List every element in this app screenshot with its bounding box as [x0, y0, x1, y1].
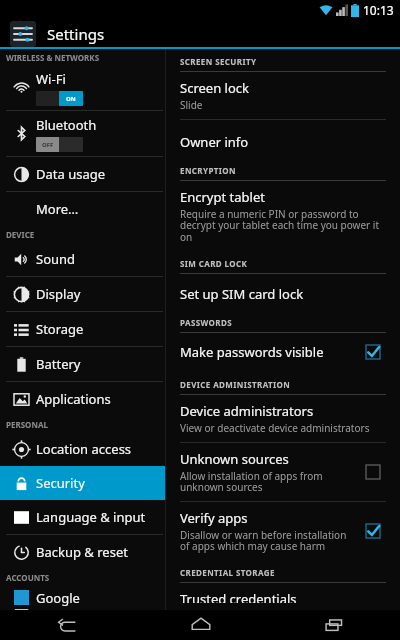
staticText: 10:13 [363, 2, 394, 18]
staticText: Make passwords visible [180, 343, 324, 361]
staticText: Verify apps [180, 509, 248, 527]
button[interactable]: Device administrators [180, 395, 386, 442]
button[interactable]: Security [0, 466, 165, 500]
button[interactable]: Encrypt tablet [180, 181, 386, 251]
other: Checked [366, 524, 380, 538]
button[interactable]: Set up SIM card lock [180, 278, 386, 310]
button[interactable]: More… [0, 192, 165, 226]
button[interactable]: ON [36, 91, 83, 106]
staticText: Owner info [180, 133, 249, 151]
button[interactable]: Recent apps [267, 610, 400, 640]
staticText: Location access [36, 440, 132, 458]
staticText: SCREEN SECURITY [180, 56, 257, 67]
staticText: Backup & reset [36, 543, 128, 561]
button[interactable]: Home [134, 610, 267, 640]
staticText: Set up SIM card lock [180, 285, 304, 303]
staticText: Settings [47, 24, 105, 44]
staticText: DEVICE ADMINISTRATION [180, 379, 291, 390]
staticText: CREDENTIAL STORAGE [180, 567, 275, 578]
button[interactable]: Backup & reset [0, 535, 165, 569]
staticText: Require a numeric PIN or password to dec… [180, 207, 379, 244]
button[interactable]: Sound [0, 242, 165, 276]
staticText: DEVICE [6, 229, 35, 240]
button[interactable]: Make passwords visible [180, 336, 386, 368]
button[interactable]: Language & input [0, 500, 165, 534]
button[interactable]: Back [0, 610, 134, 640]
staticText: Display [36, 285, 81, 303]
staticText: View or deactivate device administrators [180, 421, 370, 435]
other: Checked [366, 345, 380, 359]
staticText: Unknown sources [180, 450, 289, 468]
staticText: Bluetooth [36, 116, 97, 134]
staticText: Applications [36, 390, 111, 408]
button[interactable]: Google [0, 585, 165, 610]
staticText: ACCOUNTS [6, 572, 50, 583]
staticText: Encrypt tablet [180, 188, 265, 206]
button[interactable]: Applications [0, 382, 165, 416]
staticText: PASSWORDS [180, 317, 233, 328]
staticText: Data usage [36, 165, 106, 183]
button[interactable]: Bluetooth [0, 111, 165, 156]
staticText: SIM CARD LOCK [180, 258, 248, 269]
staticText: Sound [36, 250, 76, 268]
staticText: More… [36, 200, 79, 218]
staticText: Allow installation of apps from unknown … [180, 469, 323, 494]
staticText: Trusted credentials [180, 590, 297, 603]
button[interactable]: Owner info [180, 126, 386, 158]
button[interactable]: Storage [0, 312, 165, 346]
staticText: ON [66, 95, 76, 103]
staticText: WIRELESS & NETWORKS [6, 52, 100, 63]
staticText: Battery [36, 355, 81, 373]
button[interactable]: Screen lock [180, 72, 386, 119]
staticText: Device administrators [180, 402, 314, 420]
staticText: Disallow or warn before installation of … [180, 528, 347, 553]
staticText: OFF [42, 141, 54, 149]
button[interactable]: Unknown sources [180, 443, 386, 501]
button[interactable]: Verify apps [180, 502, 386, 560]
staticText: Storage [36, 320, 84, 338]
staticText: Google [36, 589, 80, 607]
other: Unchecked [366, 465, 380, 479]
button[interactable]: Trusted credentials [180, 583, 386, 610]
button[interactable]: Location access [0, 432, 165, 466]
staticText: ENCRYPTION [180, 165, 236, 176]
button[interactable]: Battery [0, 347, 165, 381]
button[interactable]: Data usage [0, 157, 165, 191]
staticText: Slide [180, 98, 203, 112]
button[interactable]: Display [0, 277, 165, 311]
staticText: PERSONAL [6, 419, 48, 430]
button[interactable]: OFF [36, 137, 83, 152]
staticText: Wi-Fi [36, 70, 66, 88]
staticText: Screen lock [180, 79, 249, 97]
staticText: Language & input [36, 508, 146, 526]
button[interactable]: Wi-Fi [0, 65, 165, 110]
staticText: Security [36, 474, 85, 492]
